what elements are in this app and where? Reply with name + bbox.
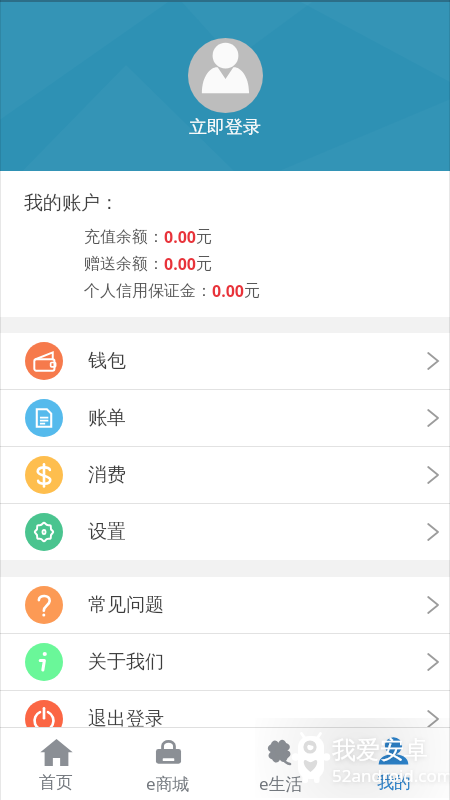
staticText: 我爱安卓 [332, 735, 428, 765]
button[interactable]: 首页 [0, 728, 112, 800]
staticText: 元 [244, 281, 260, 301]
button[interactable]: 立即登录 [0, 116, 450, 139]
staticText: 钱包 [88, 349, 126, 373]
staticText: 元 [196, 254, 212, 274]
staticText: 我的 [377, 772, 411, 793]
staticText: 消费 [88, 463, 126, 487]
staticText: 退出登录 [88, 707, 164, 731]
staticText: e商城 [146, 772, 190, 795]
button[interactable]: e生活 [224, 728, 337, 800]
button[interactable]: 常见问题 [0, 577, 450, 633]
button[interactable]: 账单 [0, 390, 450, 446]
button[interactable]: 关于我们 [0, 634, 450, 690]
staticText: e生活 [259, 772, 303, 795]
staticText: 52android.com [332, 764, 450, 787]
staticText: 首页 [39, 772, 73, 793]
button[interactable]: 设置 [0, 504, 450, 560]
staticText: 元 [196, 227, 212, 247]
staticText: 个人信用保证金： [84, 281, 212, 301]
staticText: 我的账户： [24, 191, 119, 215]
button[interactable]: 我的 [337, 728, 450, 800]
staticText: 立即登录 [189, 116, 261, 139]
staticText: 0.00 [164, 226, 196, 248]
staticText: 关于我们 [88, 650, 164, 674]
staticText: 充值余额： [84, 227, 164, 247]
button[interactable]: e商城 [112, 728, 224, 800]
staticText: 账单 [88, 406, 126, 430]
button[interactable]: Login avatar [188, 38, 263, 113]
staticText: 0.00 [212, 280, 244, 302]
button[interactable]: 钱包 [0, 333, 450, 389]
button[interactable]: 退出登录 [0, 691, 450, 747]
staticText: 0.00 [164, 253, 196, 275]
button[interactable]: 消费 [0, 447, 450, 503]
staticText: 设置 [88, 520, 126, 544]
staticText: 常见问题 [88, 593, 164, 617]
staticText: 赠送余额： [84, 254, 164, 274]
